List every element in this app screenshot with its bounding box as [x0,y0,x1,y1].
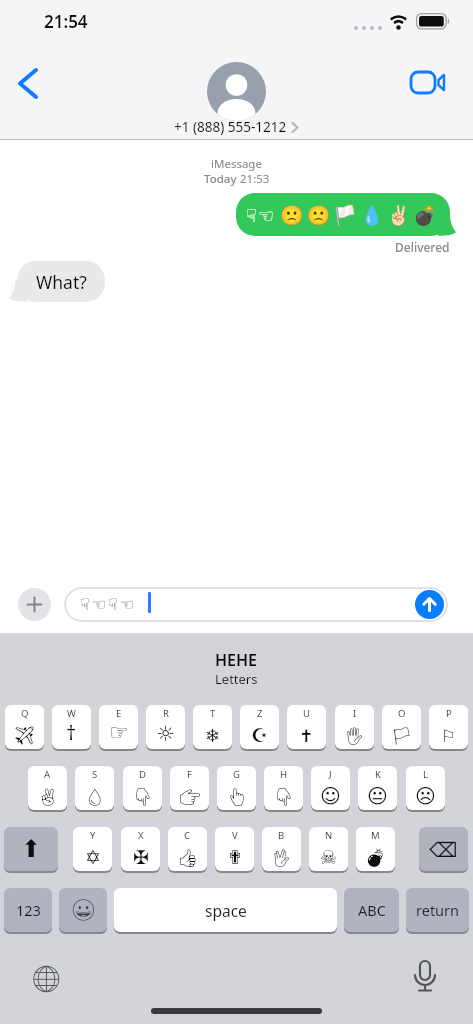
staticText: O [398,707,406,720]
button[interactable]: U [287,705,326,749]
button[interactable]: J [311,766,350,810]
staticText: W [67,707,76,720]
staticText: M [371,829,380,842]
button[interactable]: ⌫ [419,827,468,871]
staticText: 💣 [364,847,387,868]
staticText: E [116,707,122,720]
button[interactable]: X [121,827,160,871]
button[interactable]: T [193,705,232,749]
button[interactable]: C [168,827,207,871]
staticText: 😀 [70,898,97,923]
staticText: What? [36,270,87,294]
staticText: 🏳 [391,726,413,746]
button[interactable]: return [406,888,469,932]
button[interactable]: H [264,766,303,810]
staticText: Today [204,171,237,187]
button[interactable]: L [406,766,445,810]
button[interactable]: Q [5,705,44,749]
button[interactable] [207,62,266,121]
button[interactable]: Z [240,705,279,749]
button[interactable]: S [75,766,114,810]
staticText: ✡ [85,846,101,868]
button[interactable]: Y [73,827,112,871]
button[interactable]: ABC [344,888,399,932]
staticText: ☟☜☟☜ [80,595,137,614]
button[interactable]: K [358,766,397,810]
staticText: Y [90,829,96,842]
button[interactable]: G [217,766,256,810]
staticText: 👉 [179,787,201,807]
button[interactable] [415,590,444,619]
staticText: ⬆ [21,835,42,863]
staticText: Letters [215,670,258,688]
staticText: U [303,707,310,720]
staticText: Delivered [395,239,450,255]
staticText: ☺ [320,784,341,807]
staticText: N [325,829,333,842]
staticText: ⚐ [441,726,457,746]
button[interactable] [18,588,51,621]
button[interactable] [8,60,46,106]
staticText: 💧 [84,787,106,807]
staticText: ☞ [109,720,129,746]
staticText: 🙁🙁🏳💧✌🏻💣 [280,204,440,226]
staticText: ABC [358,900,386,920]
button[interactable]: B [262,827,301,871]
button[interactable]: M [356,827,395,871]
staticText: ⌫ [429,838,458,861]
staticText: 21:53 [237,171,270,187]
staticText: ☪ [251,724,269,746]
staticText: ✝ [299,726,314,746]
staticText: † [66,719,77,746]
staticText: D [139,768,146,781]
button[interactable]: 🌐 [30,962,64,996]
staticText: ❄ [205,725,221,746]
button[interactable]: +1 (888) 555-1212 [174,118,299,136]
staticText: ✟ [227,846,243,868]
staticText: 👇 [132,787,154,807]
staticText: X [138,829,144,842]
staticText: K [375,768,381,781]
staticText: P [446,707,452,720]
staticText: 👇 [273,787,295,807]
staticText: ✈ [13,725,36,746]
staticText: A [44,768,51,781]
staticText: H [280,768,288,781]
button[interactable]: 123 [4,888,52,932]
staticText: ☟☜ [246,205,276,226]
button[interactable]: space [114,888,337,932]
staticText: Z [257,707,263,720]
button[interactable]: V [215,827,254,871]
staticText: ☹ [415,784,436,807]
button[interactable] [410,958,440,998]
staticText: 123 [16,900,41,920]
button[interactable]: ☟☜☟☜ [64,587,448,622]
staticText: 👆 [226,787,248,807]
button[interactable]: W [52,705,91,749]
staticText: S [92,768,98,781]
button[interactable]: F [170,766,209,810]
button[interactable]: D [123,766,162,810]
button[interactable]: P [429,705,468,749]
button[interactable]: A [28,766,67,810]
staticText: 21:54 [44,10,88,33]
button[interactable]: O [382,705,421,749]
button[interactable]: R [146,705,185,749]
staticText: ☼ [156,722,175,746]
staticText: I [353,707,357,720]
button[interactable]: What? [17,261,105,302]
staticText: J [329,768,332,781]
staticText: 😐 [367,784,388,807]
staticText: ☠ [320,846,338,868]
staticText: R [163,707,169,720]
button[interactable]: ⬆ [4,827,58,871]
button[interactable] [406,64,452,102]
button[interactable]: I [335,705,374,749]
staticText: V [232,829,238,842]
staticText: +1 (888) 555-1212 [174,118,287,136]
button[interactable]: 😀 [59,888,107,932]
button[interactable]: N [309,827,348,871]
button[interactable]: E [99,705,138,749]
button[interactable]: ☟☜ [236,193,450,236]
staticText: G [233,768,240,781]
